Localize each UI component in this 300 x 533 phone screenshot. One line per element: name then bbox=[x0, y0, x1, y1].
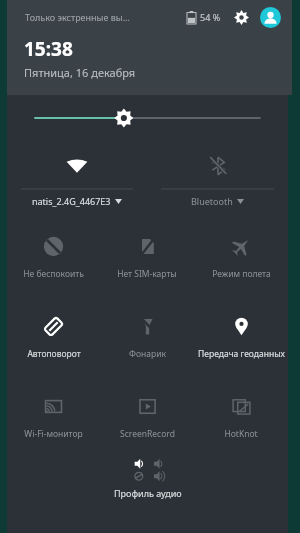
staticText: Нет SIM-карты bbox=[117, 268, 177, 280]
button[interactable]: Wi-Fi-монитор bbox=[7, 377, 100, 457]
staticText: 15:38 bbox=[24, 36, 73, 62]
button[interactable]: natis_2.4G_4467E3 bbox=[7, 141, 147, 215]
button[interactable]: Нет SIM-карты bbox=[100, 217, 194, 297]
staticText: Пятница, 16 декабря bbox=[24, 65, 136, 80]
button[interactable]: HotKnot bbox=[194, 377, 288, 457]
staticText: ScreenRecord bbox=[120, 428, 175, 440]
button[interactable]: Передача геоданных bbox=[194, 297, 288, 377]
button[interactable]: Brightness bbox=[7, 95, 288, 141]
staticText: natis_2.4G_4467E3 bbox=[32, 195, 111, 207]
button[interactable]: Режим полета bbox=[194, 217, 288, 297]
staticText: Только экстренные вы… bbox=[25, 11, 130, 23]
staticText: Фонарик bbox=[129, 348, 166, 360]
button[interactable]: Автоповорот bbox=[7, 297, 100, 377]
button[interactable]: Settings bbox=[230, 6, 252, 28]
staticText: HotKnot bbox=[224, 428, 258, 440]
button[interactable]: Bluetooth bbox=[147, 141, 288, 215]
staticText: Режим полета bbox=[212, 268, 271, 280]
staticText: Передача геоданных bbox=[198, 348, 285, 360]
staticText: Не беспокоить bbox=[23, 268, 84, 280]
staticText: Wi-Fi-монитор bbox=[24, 428, 83, 440]
button[interactable]: Фонарик bbox=[100, 297, 194, 377]
button[interactable]: Не беспокоить bbox=[7, 217, 100, 297]
staticText: Профиль аудио bbox=[114, 487, 182, 499]
staticText: Bluetooth bbox=[191, 195, 233, 207]
staticText: 54 % bbox=[200, 11, 221, 23]
button[interactable]: ScreenRecord bbox=[100, 377, 194, 457]
button[interactable]: Audio profile bbox=[7, 457, 288, 499]
button[interactable]: User bbox=[258, 5, 282, 29]
staticText: Автоповорот bbox=[27, 348, 81, 360]
